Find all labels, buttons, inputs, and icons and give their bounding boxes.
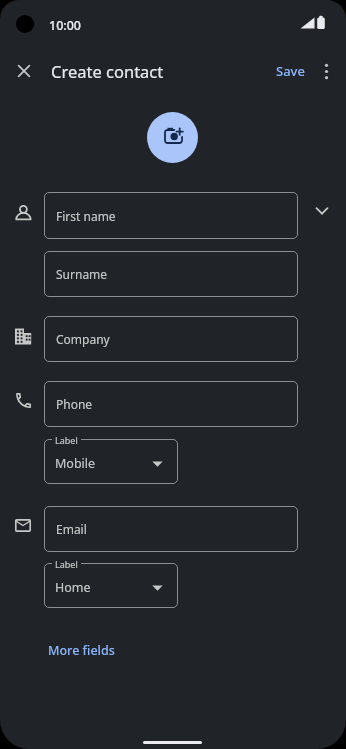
button[interactable]: Email [44, 506, 298, 552]
button[interactable]: Phone [44, 381, 298, 427]
staticText: Company [56, 331, 110, 347]
button[interactable] [10, 57, 38, 85]
staticText: More fields [48, 642, 115, 659]
button[interactable]: More fields [40, 636, 123, 665]
staticText: Home [55, 579, 91, 596]
button[interactable]: Mobile [44, 439, 178, 484]
button[interactable] [147, 112, 198, 163]
staticText: Surname [56, 266, 108, 282]
button[interactable] [314, 59, 339, 84]
staticText: Create contact [51, 60, 164, 82]
staticText: Label [55, 434, 78, 446]
staticText: Email [56, 521, 87, 537]
staticText: Save [276, 62, 305, 80]
staticText: 10:00 [49, 17, 82, 34]
button[interactable]: Company [44, 316, 298, 362]
staticText: First name [56, 208, 116, 224]
button[interactable]: Home [44, 563, 178, 608]
staticText: Phone [56, 396, 93, 412]
staticText: Label [55, 558, 78, 570]
button[interactable]: Save [268, 58, 313, 83]
button[interactable]: Surname [44, 251, 298, 297]
staticText: Mobile [55, 455, 96, 472]
button[interactable]: First name [44, 192, 298, 239]
